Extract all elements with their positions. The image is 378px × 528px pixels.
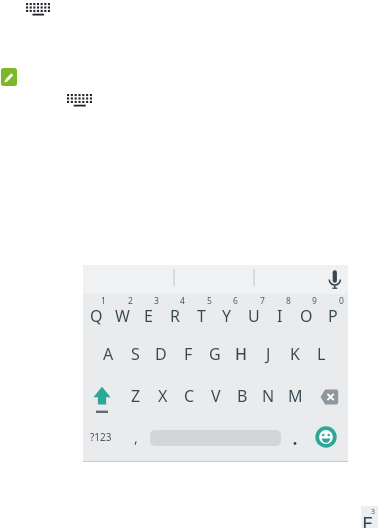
- staticText: X: [158, 385, 168, 407]
- staticText: I: [277, 305, 283, 327]
- staticText: B: [237, 385, 248, 407]
- staticText: Z: [131, 385, 141, 407]
- staticText: V: [211, 385, 221, 407]
- staticText: S: [131, 343, 140, 365]
- staticText: ,: [134, 428, 138, 447]
- staticText: 7: [260, 295, 265, 307]
- staticText: F: [184, 343, 193, 365]
- staticText: P: [328, 305, 338, 327]
- staticText: H: [235, 343, 247, 365]
- staticText: 4: [180, 295, 185, 307]
- staticText: C: [184, 385, 195, 407]
- staticText: O: [300, 305, 313, 327]
- staticText: M: [288, 385, 303, 407]
- staticText: N: [262, 385, 275, 407]
- staticText: 8: [286, 295, 291, 307]
- staticText: 3: [154, 295, 159, 307]
- staticText: 0: [339, 295, 344, 307]
- staticText: R: [170, 305, 180, 327]
- staticText: E: [362, 510, 374, 528]
- staticText: 2: [128, 295, 133, 307]
- staticText: 5: [207, 295, 212, 307]
- staticText: J: [266, 343, 271, 365]
- staticText: ?123: [90, 430, 112, 444]
- staticText: E: [144, 305, 153, 327]
- staticText: L: [317, 343, 326, 365]
- staticText: U: [248, 305, 260, 327]
- button[interactable]: [315, 426, 337, 448]
- staticText: 9: [312, 295, 317, 307]
- staticText: G: [209, 343, 221, 365]
- staticText: Q: [90, 305, 103, 327]
- staticText: W: [115, 305, 130, 327]
- staticText: K: [290, 343, 300, 365]
- button[interactable]: [67, 94, 92, 107]
- button[interactable]: [26, 3, 50, 16]
- staticText: A: [103, 343, 114, 365]
- button[interactable]: [83, 265, 348, 461]
- staticText: Y: [222, 305, 232, 327]
- button[interactable]: [1, 68, 17, 86]
- staticText: D: [155, 343, 167, 365]
- staticText: T: [197, 305, 206, 327]
- staticText: 1: [101, 295, 106, 307]
- staticText: 3: [371, 507, 376, 517]
- staticText: 6: [233, 295, 238, 307]
